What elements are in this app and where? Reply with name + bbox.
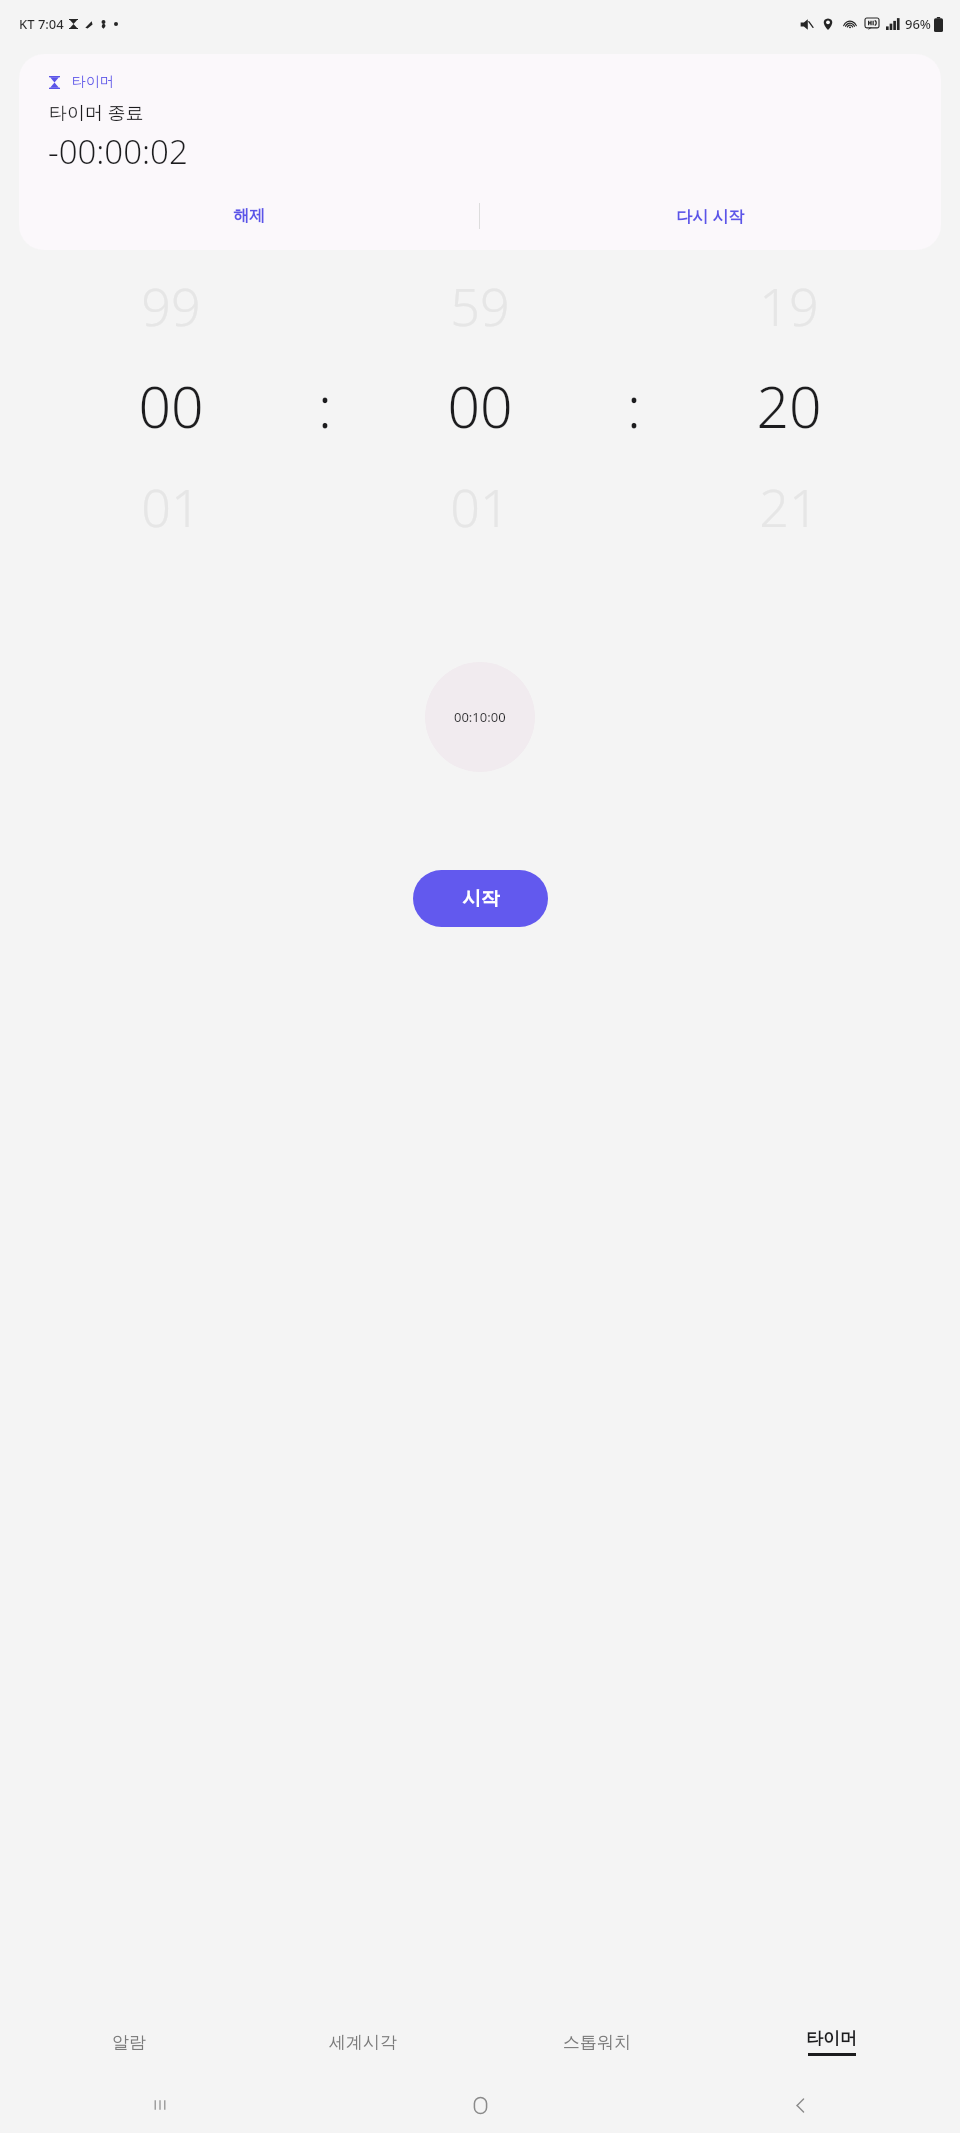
staticText: 59 [450,270,510,341]
staticText: : [627,367,641,445]
staticText: 00 [138,367,204,445]
staticText: : [318,367,332,445]
button[interactable]: 시작 [413,870,548,927]
staticText: 시작 [462,887,500,911]
button[interactable]: 00 [34,367,308,445]
staticText: 01 [141,471,201,542]
button[interactable]: 다시 시작 [480,188,941,244]
staticText: 20 [756,367,822,445]
button[interactable]: Home [320,2077,640,2133]
staticText: 21 [759,471,819,542]
button[interactable]: 해제 [19,188,479,244]
button[interactable]: Recent apps [0,2077,320,2133]
button[interactable]: 스톱워치 [480,2007,714,2077]
staticText: 타이머 종료 [49,100,144,125]
staticText: 해제 [233,206,265,226]
button[interactable]: 20 [651,367,926,445]
staticText: 00 [447,367,513,445]
staticText: 알람 [112,2032,146,2053]
staticText: 스톱워치 [563,2032,631,2053]
staticText: 세계시각 [329,2032,397,2053]
staticText: 99 [141,270,201,341]
button[interactable]: 타이머 [714,2007,948,2077]
button[interactable]: 00 [342,367,617,445]
staticText: KT 7:04 [19,15,64,33]
button[interactable]: 알람 [12,2007,246,2077]
staticText: 19 [759,270,819,341]
button[interactable]: 타이머 [19,54,941,250]
button[interactable]: Back [640,2077,960,2133]
staticText: 01 [450,471,510,542]
staticText: 타이머 [806,2028,857,2049]
staticText: 다시 시작 [676,205,745,227]
staticText: 96% [905,15,931,33]
staticText: 00:10:00 [454,708,506,726]
staticText: 타이머 [72,73,114,91]
button[interactable]: 00:10:00 [425,662,535,772]
staticText: -00:00:02 [48,129,188,174]
button[interactable]: 세계시각 [246,2007,480,2077]
